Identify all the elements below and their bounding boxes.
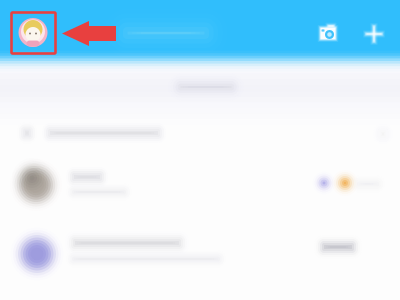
button[interactable]: Profile [18, 18, 47, 47]
button[interactable]: Open conversation [11, 228, 63, 280]
button[interactable]: Compose [357, 17, 391, 51]
button[interactable]: Open conversation [10, 159, 62, 211]
button[interactable]: Camera [310, 17, 346, 51]
